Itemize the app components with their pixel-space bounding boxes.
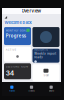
staticText: INSIGHTS [34, 49, 48, 51]
staticText: MONTHLY GOAL [6, 29, 27, 32]
staticText: Items [28, 90, 34, 92]
staticText: Welcome back [4, 20, 31, 25]
staticText: Weekly report ready [34, 52, 56, 59]
staticText: ACTIVE [6, 48, 16, 51]
staticText: Scan [43, 74, 48, 77]
staticText: 34 [6, 69, 14, 77]
button[interactable]: Home [2, 82, 22, 96]
staticText: Progress [6, 33, 26, 38]
staticText: More [49, 90, 54, 92]
button[interactable]: ACTIVE [4, 47, 31, 62]
button[interactable]: Scan [32, 64, 60, 81]
button[interactable]: Featured photo [32, 27, 60, 47]
button[interactable]: Items [22, 82, 41, 96]
staticText: SESSIONS TODAY [6, 65, 29, 68]
button[interactable]: SESSIONS TODAY [4, 63, 31, 79]
button[interactable]: MONTHLY GOAL [4, 27, 31, 45]
button[interactable]: More [41, 82, 61, 96]
staticText: Home [9, 90, 15, 92]
staticText: Overview [21, 8, 41, 14]
button[interactable]: INSIGHTS [32, 49, 60, 63]
